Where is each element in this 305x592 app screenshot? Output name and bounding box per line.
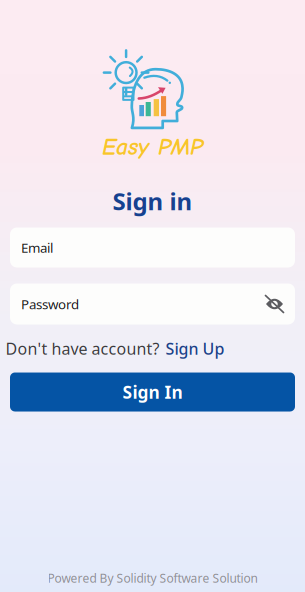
staticText: Sign In: [122, 380, 182, 403]
staticText: Email: [21, 239, 53, 256]
staticText: Easy PMP: [102, 133, 203, 161]
button[interactable]: Show password: [265, 295, 284, 313]
staticText: Don't have account?: [5, 338, 159, 359]
staticText: Powered By Solidity Software Solution: [47, 570, 257, 586]
button[interactable]: Sign In: [10, 372, 295, 411]
staticText: Sign Up: [165, 338, 224, 359]
staticText: Sign in: [112, 185, 192, 217]
button[interactable]: Sign Up: [165, 338, 224, 359]
staticText: Password: [21, 295, 79, 313]
